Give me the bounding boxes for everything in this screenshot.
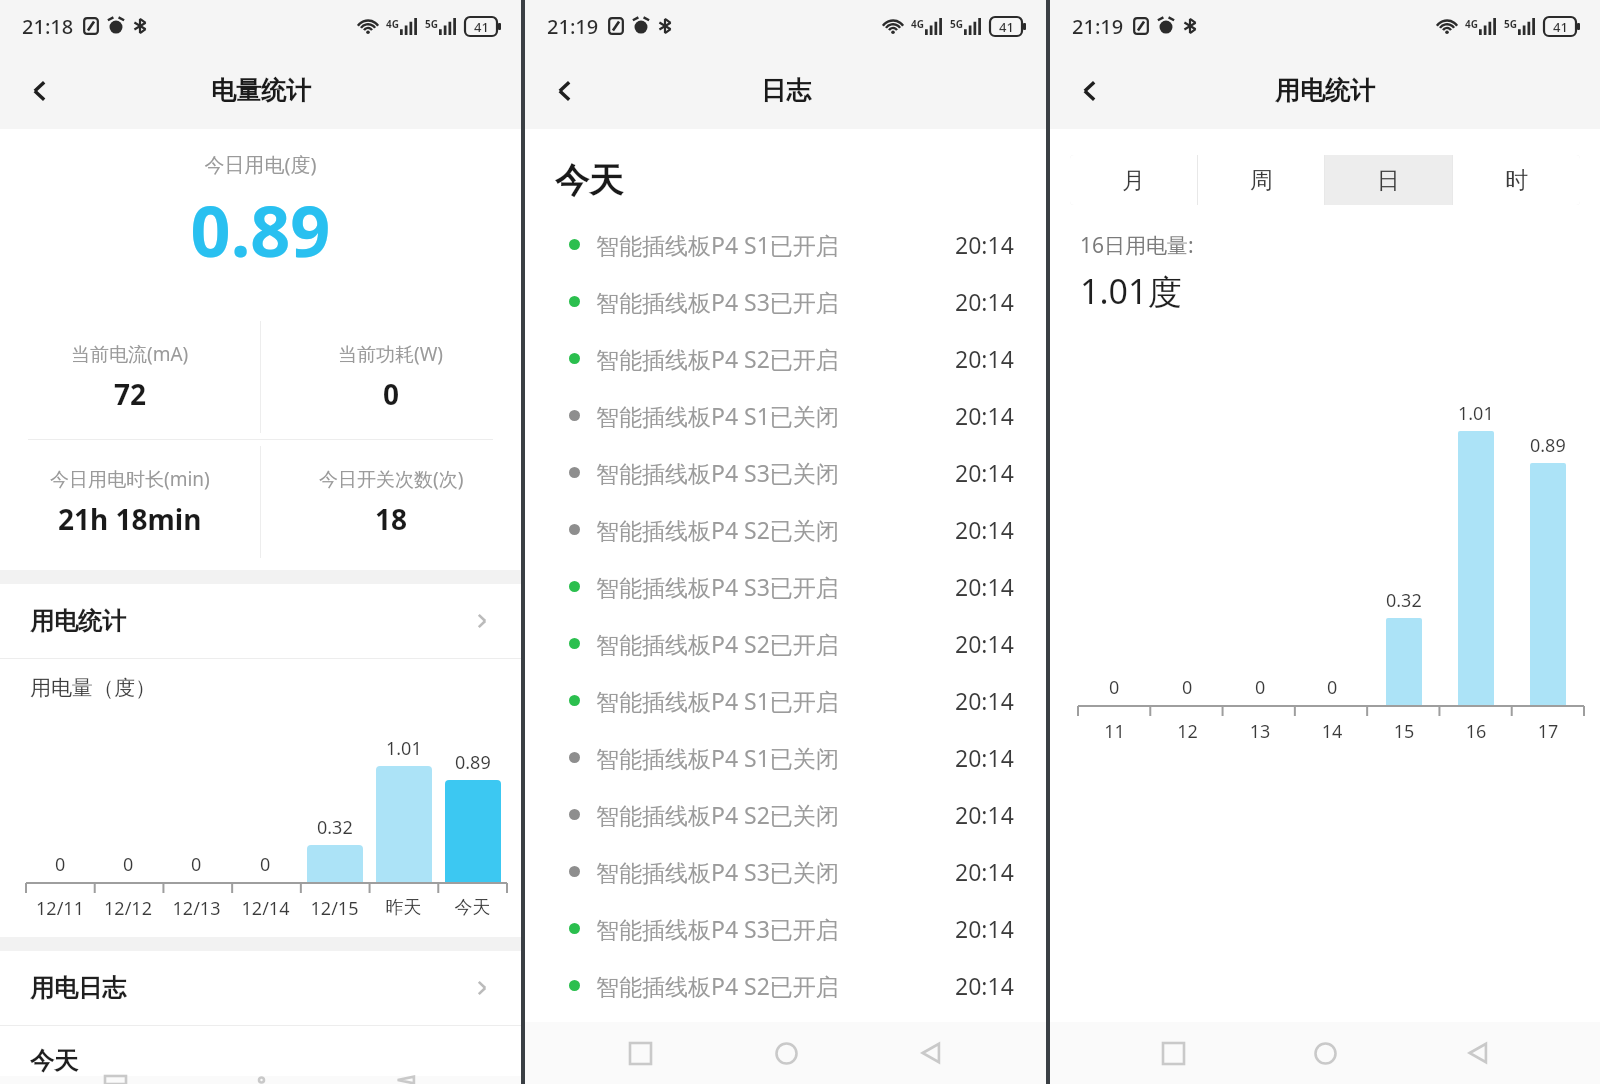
staticText: 0	[191, 852, 202, 877]
staticText: 智能插线板P4 S2已关闭	[596, 799, 839, 830]
staticText: 5G	[1504, 17, 1517, 31]
button[interactable]: Back	[1062, 63, 1118, 119]
staticText: 0	[55, 852, 66, 877]
button[interactable]: 智能插线板P4 S3已关闭	[525, 444, 1046, 501]
button[interactable]: 用电统计	[0, 584, 521, 658]
staticText: 智能插线板P4 S3已关闭	[596, 457, 839, 488]
staticText: 0.89	[1530, 433, 1566, 458]
staticText: 20:14	[955, 457, 1014, 488]
staticText: 0.89	[455, 750, 491, 775]
staticText: 21:18	[22, 13, 74, 40]
staticText: 20:14	[955, 799, 1014, 830]
staticText: 1.01	[1458, 401, 1494, 426]
staticText: 1.01	[386, 736, 422, 761]
staticText: 用电日志	[30, 973, 126, 1003]
button[interactable]: 用电日志	[0, 951, 521, 1025]
staticText: 智能插线板P4 S1已开启	[596, 229, 839, 260]
button[interactable]: Home	[231, 1076, 291, 1084]
button[interactable]: 智能插线板P4 S2已关闭	[525, 501, 1046, 558]
staticText: 智能插线板P4 S2已开启	[596, 970, 839, 1001]
staticText: 今天	[555, 159, 623, 202]
staticText: 20:14	[955, 343, 1014, 374]
staticText: 今天	[438, 896, 507, 919]
staticText: 智能插线板P4 S2已开启	[596, 628, 839, 659]
staticText: 日	[1377, 166, 1400, 195]
staticText: 智能插线板P4 S3已开启	[596, 571, 839, 602]
button[interactable]: 智能插线板P4 S1已开启	[525, 672, 1046, 729]
staticText: 周	[1250, 166, 1273, 195]
button[interactable]: 智能插线板P4 S1已开启	[525, 216, 1046, 273]
staticText: 20:14	[955, 514, 1014, 545]
staticText: 今日开关次数(次)	[319, 466, 464, 492]
staticText: 20:14	[955, 571, 1014, 602]
staticText: 智能插线板P4 S3已开启	[596, 286, 839, 317]
button[interactable]: Home	[1295, 1023, 1355, 1083]
staticText: 1.01度	[1080, 268, 1182, 314]
staticText: 今日用电(度)	[0, 151, 521, 178]
staticText: 15	[1368, 719, 1440, 744]
button[interactable]: 智能插线板P4 S2已开启	[525, 330, 1046, 387]
staticText: 智能插线板P4 S1已关闭	[596, 742, 839, 773]
staticText: 智能插线板P4 S1已关闭	[596, 400, 839, 431]
staticText: 0	[1109, 675, 1120, 700]
staticText: 18	[375, 500, 408, 538]
staticText: 今日用电时长(min)	[50, 466, 210, 492]
staticText: 12/12	[94, 896, 162, 921]
staticText: 12/15	[300, 896, 369, 921]
staticText: 智能插线板P4 S3已开启	[596, 913, 839, 944]
staticText: 13	[1224, 719, 1296, 744]
staticText: 20:14	[955, 685, 1014, 716]
button[interactable]: Recents	[610, 1023, 670, 1083]
staticText: 41	[474, 18, 489, 36]
button[interactable]: Recents	[1143, 1023, 1203, 1083]
staticText: 16	[1440, 719, 1512, 744]
staticText: 今天	[30, 1046, 78, 1076]
staticText: 14	[1296, 719, 1368, 744]
staticText: 0	[1182, 675, 1193, 700]
staticText: 智能插线板P4 S2已开启	[596, 343, 839, 374]
button[interactable]: 月	[1070, 155, 1197, 205]
staticText: 72	[114, 375, 147, 413]
staticText: 12	[1151, 719, 1224, 744]
button[interactable]: Back	[901, 1023, 961, 1083]
staticText: 用电量（度）	[30, 675, 156, 701]
staticText: 21:19	[547, 13, 599, 40]
staticText: 日志	[761, 75, 811, 106]
staticText: 20:14	[955, 229, 1014, 260]
staticText: 20:14	[955, 742, 1014, 773]
button[interactable]: Home	[756, 1023, 816, 1083]
staticText: 0	[1327, 675, 1338, 700]
button[interactable]: Back	[376, 1076, 436, 1084]
staticText: 16日用电量:	[1080, 231, 1194, 260]
button[interactable]: 日	[1325, 155, 1452, 205]
button[interactable]: Recents	[85, 1076, 145, 1084]
staticText: 0.89	[0, 182, 521, 277]
staticText: 4G	[911, 17, 924, 31]
staticText: 11	[1078, 719, 1151, 744]
staticText: 时	[1505, 166, 1528, 195]
staticText: 4G	[1465, 17, 1478, 31]
staticText: 智能插线板P4 S2已关闭	[596, 514, 839, 545]
button[interactable]: 智能插线板P4 S3已开启	[525, 900, 1046, 957]
staticText: 0.32	[317, 815, 353, 840]
button[interactable]: 智能插线板P4 S3已开启	[525, 273, 1046, 330]
button[interactable]: Back	[12, 63, 68, 119]
staticText: 20:14	[955, 286, 1014, 317]
button[interactable]: 智能插线板P4 S1已关闭	[525, 729, 1046, 786]
button[interactable]: 智能插线板P4 S2已开启	[525, 615, 1046, 672]
button[interactable]: 智能插线板P4 S3已开启	[525, 558, 1046, 615]
staticText: 20:14	[955, 970, 1014, 1001]
button[interactable]: 周	[1198, 155, 1324, 205]
button[interactable]: Back	[537, 63, 593, 119]
staticText: 月	[1122, 166, 1145, 195]
staticText: 昨天	[369, 896, 438, 919]
button[interactable]: 智能插线板P4 S1已关闭	[525, 387, 1046, 444]
button[interactable]: 智能插线板P4 S2已开启	[525, 957, 1046, 1014]
button[interactable]: Back	[1448, 1023, 1508, 1083]
button[interactable]: 智能插线板P4 S2已关闭	[525, 786, 1046, 843]
staticText: 用电统计	[30, 606, 126, 636]
staticText: 智能插线板P4 S1已开启	[596, 685, 839, 716]
staticText: 0	[1255, 675, 1266, 700]
button[interactable]: 智能插线板P4 S3已关闭	[525, 843, 1046, 900]
button[interactable]: 时	[1453, 155, 1580, 205]
